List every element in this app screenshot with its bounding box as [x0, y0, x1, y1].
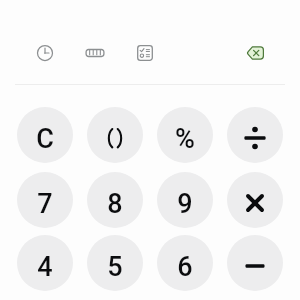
button[interactable]: Formulas	[128, 36, 162, 70]
staticText: 6	[177, 251, 193, 283]
button[interactable]: %	[157, 107, 213, 163]
button[interactable]	[87, 107, 143, 163]
button[interactable]: 6	[157, 235, 213, 291]
button[interactable]: Multiply	[227, 172, 283, 228]
button[interactable]: Divide	[227, 107, 283, 163]
staticText: 9	[177, 188, 193, 220]
staticText: 8	[107, 188, 123, 220]
button[interactable]: 7	[17, 172, 73, 228]
button[interactable]: Unit converter	[78, 36, 112, 70]
staticText: C	[36, 123, 54, 155]
button[interactable]: History	[28, 36, 62, 70]
button[interactable]: 9	[157, 172, 213, 228]
button[interactable]: Subtract	[227, 235, 283, 291]
staticText: 4	[37, 251, 53, 283]
button[interactable]: Backspace	[238, 36, 272, 70]
button[interactable]: 8	[87, 172, 143, 228]
staticText: 5	[107, 251, 123, 283]
button[interactable]: 4	[17, 235, 73, 291]
button[interactable]: 5	[87, 235, 143, 291]
button[interactable]: C	[17, 107, 73, 163]
staticText: 7	[37, 188, 53, 220]
staticText: %	[175, 123, 195, 155]
